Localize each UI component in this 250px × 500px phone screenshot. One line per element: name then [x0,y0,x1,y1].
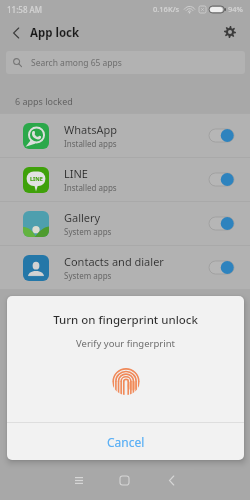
button[interactable]: LINE [0,158,250,201]
staticText: Gallery [64,210,101,225]
staticText: Installed apps [64,138,117,149]
staticText: Contacts and dialer [64,254,164,269]
staticText: 11:58 AM [7,4,43,15]
staticText: WhatsApp [64,122,117,137]
staticText: System apps [64,226,112,237]
staticText: Installed apps [64,182,117,193]
staticText: 0.16K/s [153,4,180,14]
staticText: Turn on fingerprint unlock [7,312,244,328]
button[interactable]: Settings [218,20,242,44]
staticText: Cancel [107,434,145,450]
button[interactable]: WhatsApp [0,114,250,157]
staticText: App lock [30,25,80,41]
staticText: Search among 65 apps [31,57,122,69]
staticText: System apps [64,270,112,281]
button[interactable]: Search among 65 apps [6,51,245,74]
button[interactable]: Back [7,18,25,48]
button[interactable]: Back [155,460,188,500]
staticText: LINE [30,175,43,182]
staticText: Verify your fingerprint [7,337,244,350]
button[interactable]: Cancel [7,423,244,460]
button[interactable]: Home [108,460,141,500]
staticText: LINE [64,166,88,181]
button[interactable]: Recent apps [62,460,95,500]
button[interactable]: Contacts and dialer [0,246,250,289]
staticText: 6 apps locked [15,95,73,107]
button[interactable]: Gallery [0,202,250,245]
staticText: 94% [228,4,243,14]
